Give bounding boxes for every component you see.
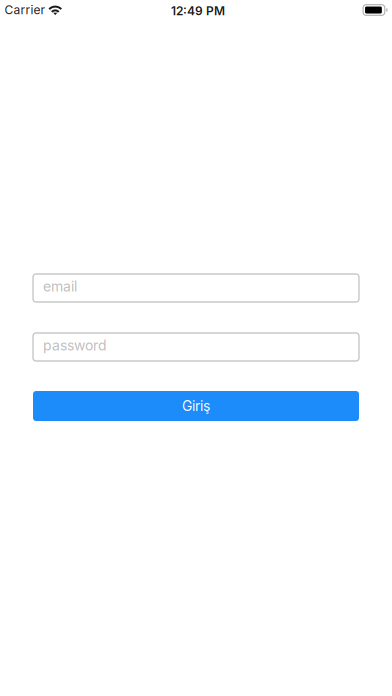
button[interactable]: password <box>33 333 359 361</box>
button[interactable]: email <box>33 274 359 302</box>
staticText: Giriş <box>182 397 210 414</box>
staticText: email <box>43 278 77 295</box>
staticText: 12:49 PM <box>171 4 225 18</box>
staticText: Carrier <box>4 3 45 17</box>
staticText: password <box>43 337 107 354</box>
button[interactable]: Giriş <box>33 391 359 421</box>
